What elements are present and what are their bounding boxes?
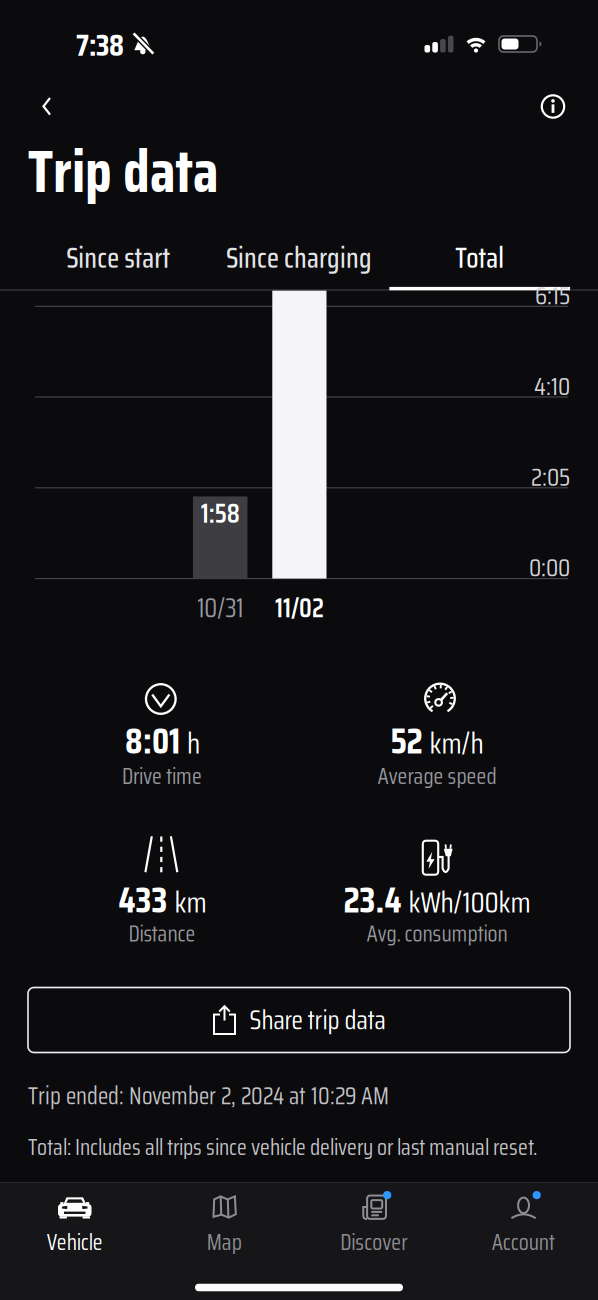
staticText: 2:05: [531, 458, 570, 496]
button[interactable]: Map: [149, 1183, 299, 1261]
staticText: Drive time: [122, 759, 202, 793]
staticText: 7:38: [76, 21, 124, 69]
staticText: Total: Includes all trips since vehicle …: [28, 1130, 537, 1164]
staticText: Trip ended: November 2, 2024 at 10:29 AM: [28, 1078, 389, 1114]
staticText: 6:15: [535, 276, 570, 315]
staticText: 433: [118, 872, 167, 928]
staticText: Avg. consumption: [366, 916, 507, 951]
button[interactable]: Since charging: [209, 229, 389, 287]
staticText: Distance: [128, 916, 195, 951]
button[interactable]: Back: [24, 84, 68, 128]
staticText: Average speed: [377, 759, 496, 793]
button[interactable]: Total: [389, 229, 570, 287]
button[interactable]: Discover: [299, 1183, 448, 1261]
staticText: Vehicle: [47, 1225, 103, 1259]
staticText: km/h: [429, 721, 483, 766]
staticText: Since charging: [226, 236, 372, 279]
staticText: 52: [390, 713, 422, 769]
button[interactable]: Info: [531, 84, 575, 128]
button[interactable]: Share trip data: [28, 987, 570, 1052]
staticText: Account: [492, 1225, 555, 1259]
staticText: 1:58: [201, 493, 240, 534]
staticText: Share trip data: [249, 999, 385, 1040]
staticText: Total: [455, 236, 504, 279]
button[interactable]: Account: [448, 1183, 598, 1261]
button[interactable]: Vehicle: [0, 1183, 149, 1261]
staticText: km: [174, 880, 206, 925]
staticText: 11/02: [275, 587, 324, 628]
staticText: Since start: [66, 236, 170, 279]
staticText: Trip data: [28, 125, 219, 217]
staticText: 8:01: [125, 713, 180, 769]
staticText: Map: [207, 1225, 242, 1259]
staticText: 23.4: [343, 872, 401, 928]
staticText: Discover: [340, 1225, 407, 1259]
button[interactable]: Since start: [28, 229, 209, 287]
staticText: 10/31: [197, 587, 243, 628]
staticText: kWh/100km: [408, 880, 530, 925]
staticText: 0:00: [529, 548, 570, 587]
staticText: 4:10: [534, 367, 570, 406]
staticText: h: [187, 721, 200, 766]
